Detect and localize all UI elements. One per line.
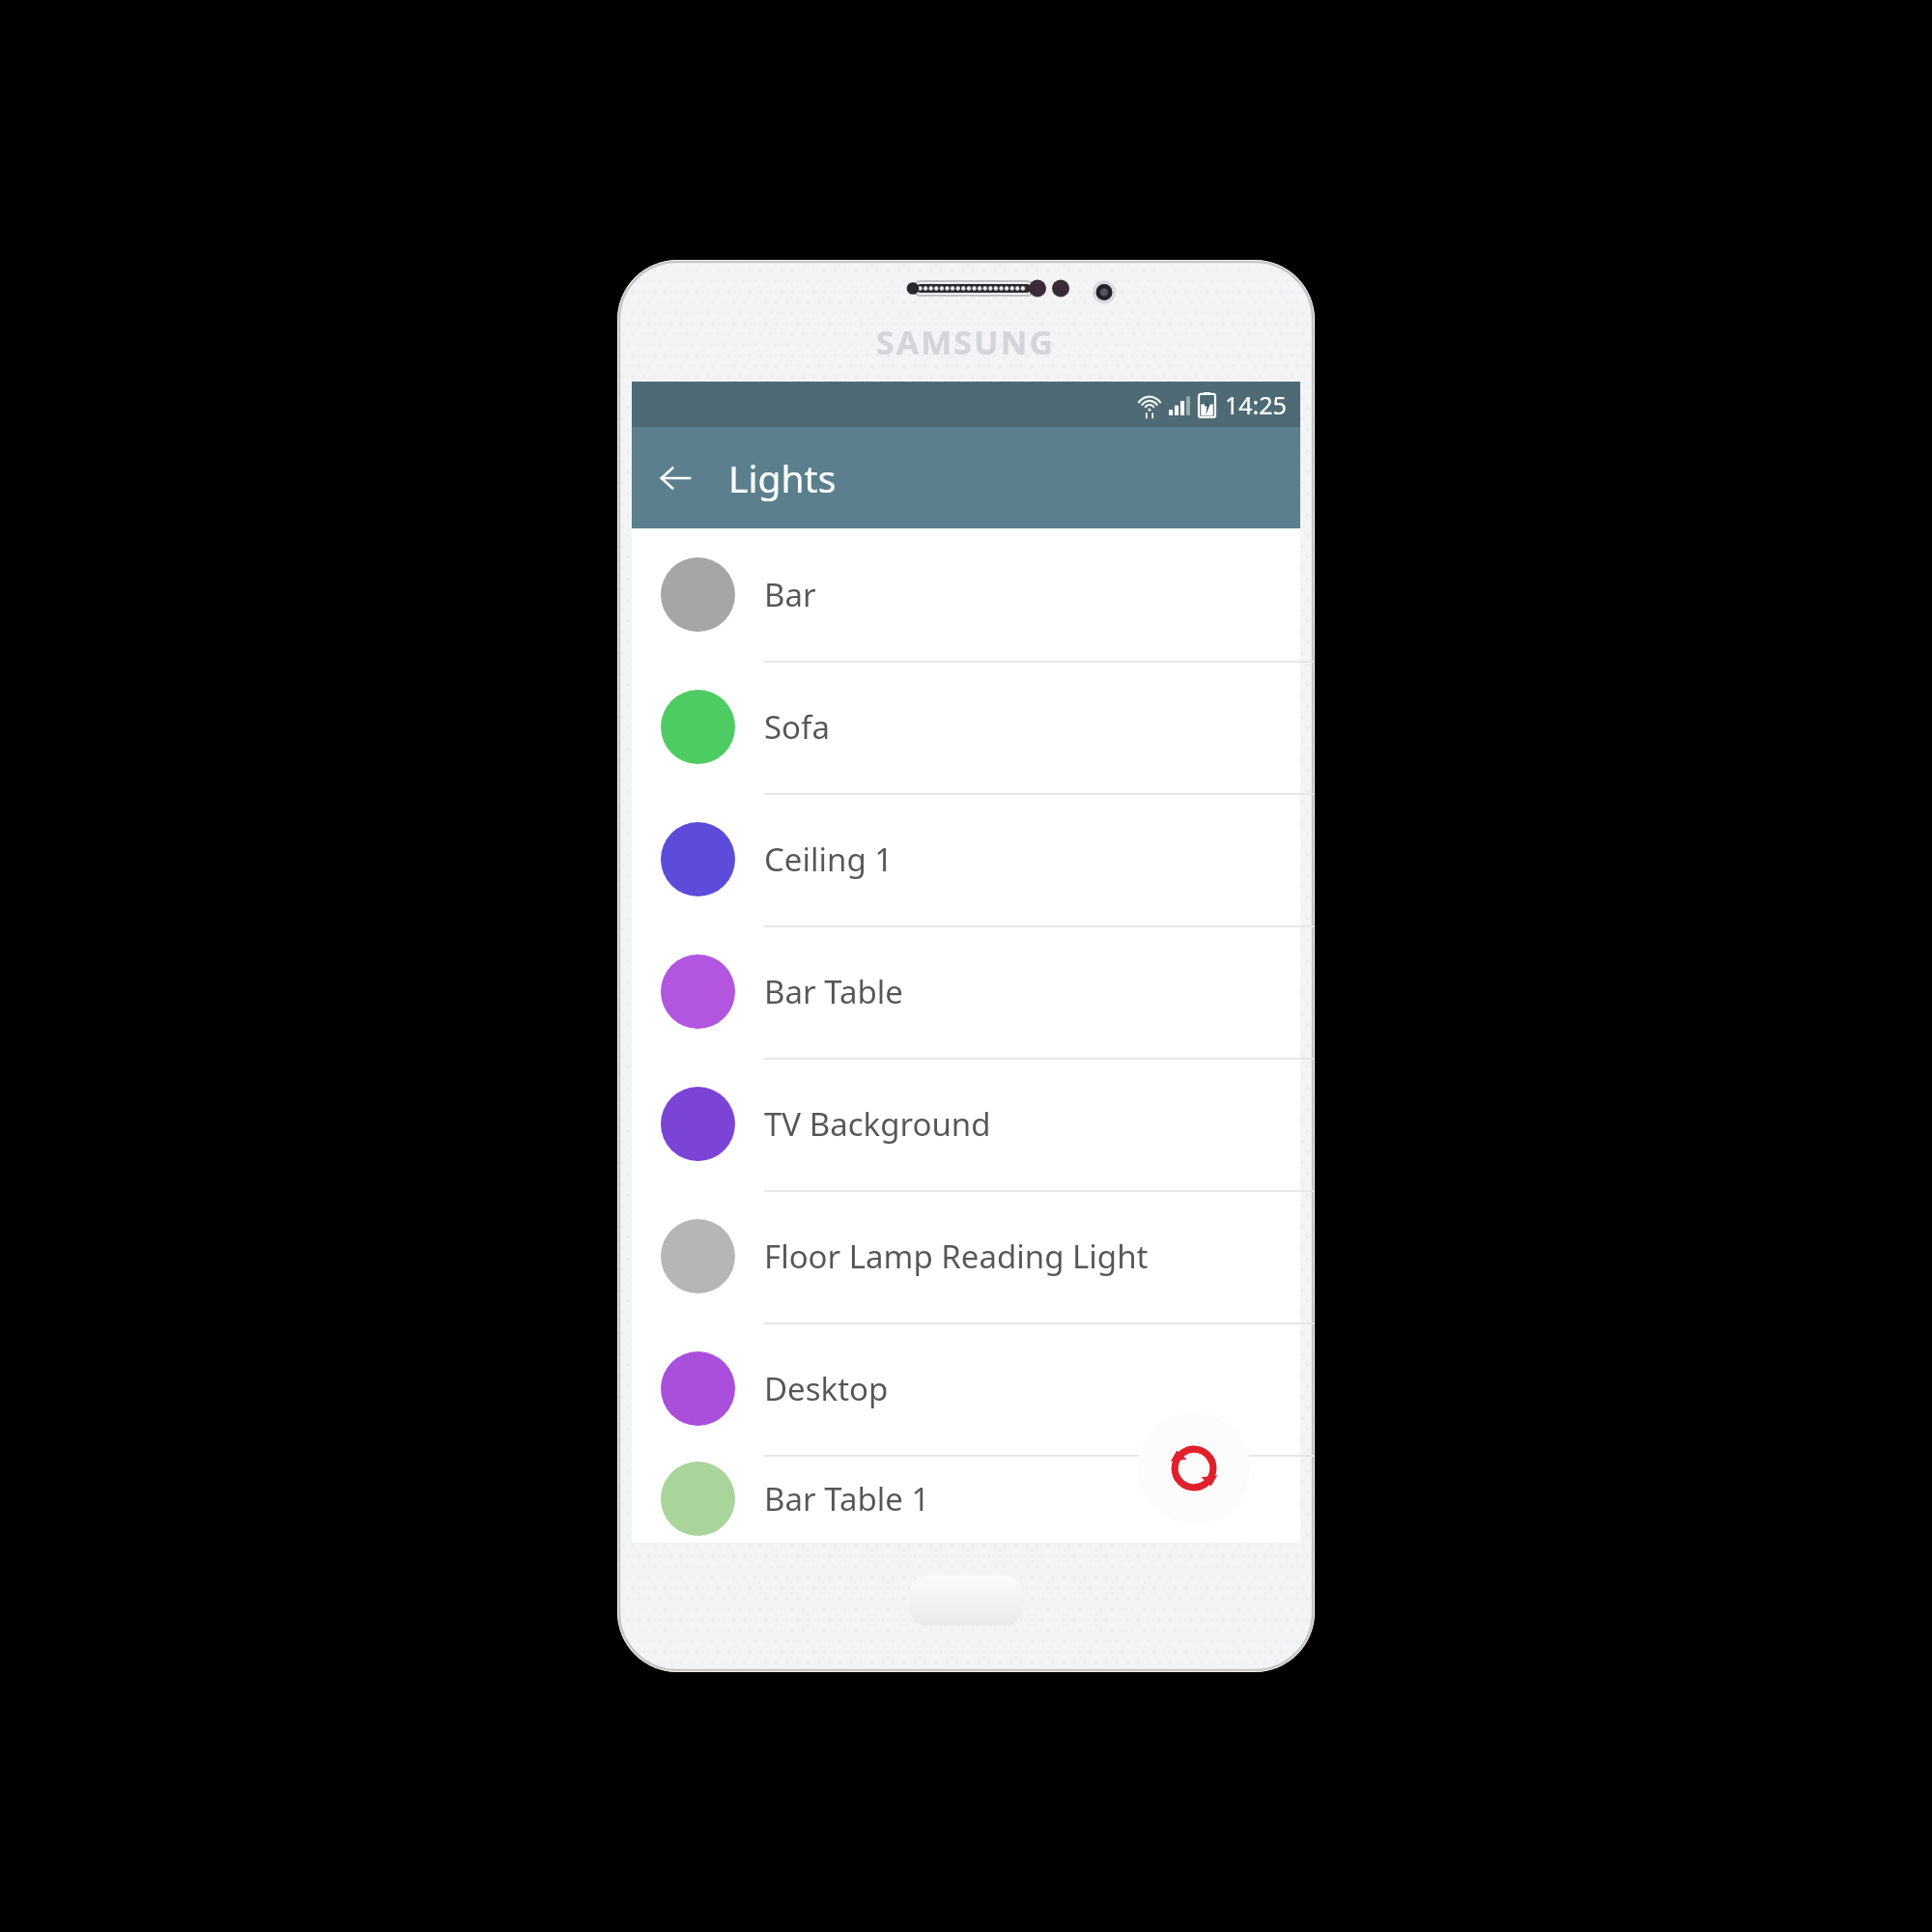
button[interactable]: TV Background <box>632 1058 1300 1190</box>
button[interactable]: Ceiling 1 <box>632 793 1300 925</box>
button[interactable]: Sofa <box>632 661 1300 793</box>
staticText: Ceiling 1 <box>764 838 894 881</box>
button[interactable]: Floor Lamp Reading Light <box>632 1190 1300 1322</box>
staticText: Sofa <box>764 705 830 749</box>
staticText: Bar <box>764 573 816 616</box>
button[interactable]: Refresh <box>1138 1412 1250 1524</box>
button[interactable]: Home <box>910 1576 1022 1626</box>
button[interactable]: Bar Table 1 <box>632 1455 1300 1543</box>
staticText: Floor Lamp Reading Light <box>764 1235 1149 1278</box>
button[interactable]: Desktop <box>632 1322 1300 1455</box>
button[interactable]: Bar Table <box>632 925 1300 1058</box>
staticText: Lights <box>728 452 837 503</box>
staticText: Bar Table <box>764 970 903 1013</box>
staticText: SAMSUNG <box>876 320 1056 364</box>
staticText: Bar Table 1 <box>764 1477 930 1520</box>
staticText: TV Background <box>764 1102 991 1146</box>
button[interactable]: Bar <box>632 528 1300 661</box>
staticText: 14:25 <box>1225 388 1287 421</box>
staticText: Desktop <box>764 1367 889 1410</box>
button[interactable]: Back <box>645 448 705 508</box>
